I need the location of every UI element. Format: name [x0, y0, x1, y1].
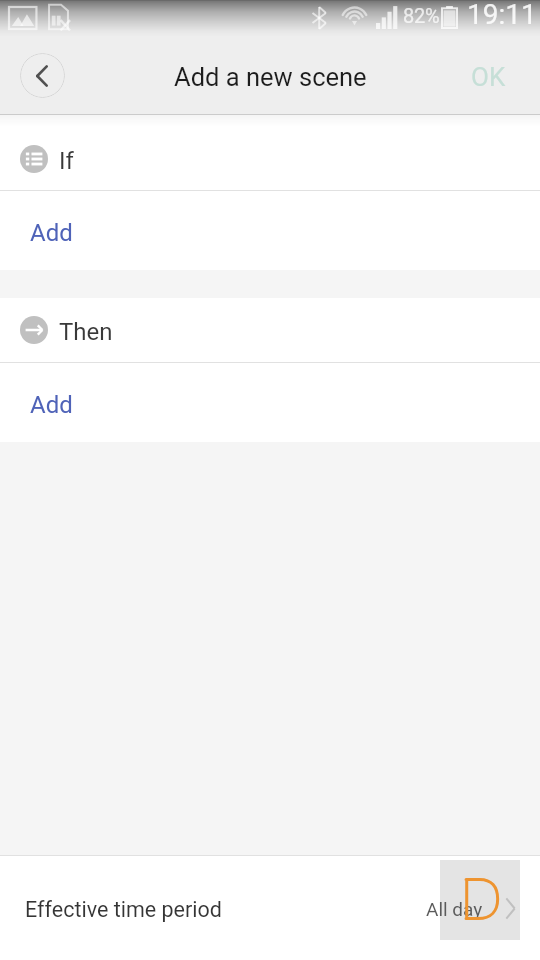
button[interactable]: OK	[453, 46, 540, 104]
staticText: Effective time period	[25, 897, 222, 922]
button[interactable]: If	[0, 127, 540, 190]
button[interactable]: Add	[0, 363, 540, 442]
staticText: 19:11	[467, 0, 537, 31]
staticText: Add	[30, 391, 73, 419]
button[interactable]: Effective time period	[0, 856, 540, 960]
staticText: All day	[426, 898, 483, 920]
button[interactable]: Then	[0, 298, 540, 362]
button[interactable]: Add	[0, 191, 540, 270]
staticText: Add a new scene	[174, 62, 367, 92]
button[interactable]: Back	[20, 53, 65, 98]
staticText: OK	[471, 62, 506, 92]
staticText: Then	[59, 318, 113, 346]
staticText: 82%	[403, 4, 440, 27]
staticText: If	[59, 147, 74, 175]
staticText: Add	[30, 219, 73, 247]
